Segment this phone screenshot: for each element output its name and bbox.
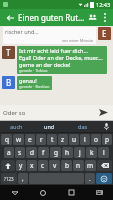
staticText: .	[89, 175, 91, 183]
staticText: Oder so	[3, 109, 26, 117]
button[interactable]: Ist mir echt leid fuer dich…	[19, 47, 105, 73]
button[interactable]: T	[2, 46, 15, 59]
button[interactable]: Hide keyboard	[0, 185, 29, 200]
button[interactable]: z	[58, 134, 68, 145]
button[interactable]: genau!	[19, 77, 50, 89]
staticText: g	[54, 148, 58, 157]
button[interactable]: v	[49, 160, 60, 171]
staticText: Egal! Oder an der Decke, muecken sind	[19, 54, 105, 61]
button[interactable]: m	[85, 160, 96, 171]
button[interactable]: auch	[0, 121, 33, 132]
staticText: auch	[10, 123, 23, 130]
button[interactable]: g	[50, 147, 61, 158]
button[interactable]: o	[91, 134, 101, 145]
staticText: gerne an der decke!	[19, 61, 71, 68]
button[interactable]: Recent apps	[57, 185, 85, 200]
staticText: m	[87, 161, 94, 170]
button[interactable]: l	[98, 147, 109, 158]
staticText: d	[30, 148, 34, 157]
staticText: e	[28, 135, 32, 144]
staticText: vor einer Minute	[62, 38, 94, 43]
staticText: c	[41, 161, 45, 170]
button[interactable]: k	[86, 147, 97, 158]
staticText: genau!	[19, 77, 37, 84]
staticText: t	[51, 135, 54, 144]
button[interactable]: x	[27, 160, 37, 171]
button[interactable]: q	[1, 134, 12, 145]
staticText: w	[16, 135, 22, 144]
staticText: das	[78, 123, 88, 130]
button[interactable]: das	[66, 121, 99, 132]
staticText: T	[6, 47, 11, 58]
staticText: q	[5, 135, 9, 144]
button[interactable]: Backspace	[97, 160, 112, 171]
button[interactable]: y	[16, 160, 26, 171]
staticText: x	[30, 161, 34, 170]
button[interactable]: Oder so	[3, 109, 97, 117]
button[interactable]: u	[69, 134, 79, 145]
button[interactable]: i	[80, 134, 90, 145]
staticText: ,	[22, 175, 24, 183]
button[interactable]: e	[25, 134, 35, 145]
button[interactable]: s	[15, 147, 25, 158]
button[interactable]: Emoji	[96, 173, 112, 184]
staticText: h	[65, 148, 70, 157]
button[interactable]: r	[36, 134, 46, 145]
staticText: gerade · Bastian	[19, 84, 50, 89]
staticText: 12:43	[96, 1, 111, 8]
button[interactable]: Back	[3, 11, 16, 24]
button[interactable]: w	[13, 134, 24, 145]
staticText: j	[79, 148, 81, 157]
button[interactable]: B	[2, 76, 15, 89]
staticText: u	[72, 135, 77, 144]
button[interactable]: h	[62, 147, 73, 158]
button[interactable]: Shift	[1, 160, 15, 171]
staticText: n	[76, 161, 81, 170]
button[interactable]: c	[38, 160, 48, 171]
staticText: ?123	[4, 176, 14, 182]
button[interactable]: Switch keyboard	[85, 185, 113, 200]
button[interactable]: n	[73, 160, 84, 171]
staticText: o	[94, 135, 98, 144]
staticText: y	[19, 161, 23, 170]
button[interactable]: j	[74, 147, 85, 158]
button[interactable]: E	[98, 27, 111, 40]
button[interactable]: und	[33, 121, 66, 132]
button[interactable]: rischer und…	[5, 28, 94, 43]
staticText: l	[103, 148, 105, 157]
button[interactable]: t	[47, 134, 57, 145]
staticText: v	[53, 161, 57, 170]
staticText: b	[65, 161, 69, 170]
button[interactable]: ,	[18, 173, 28, 184]
staticText: E	[102, 28, 107, 39]
staticText: s	[18, 148, 22, 157]
staticText: r	[40, 135, 43, 144]
staticText: k	[90, 148, 94, 157]
button[interactable]: d	[26, 147, 37, 158]
button[interactable]: More options	[99, 12, 110, 23]
button[interactable]: f	[38, 147, 49, 158]
staticText: Einen guten Rutsch in…	[18, 12, 86, 23]
button[interactable]: p	[102, 134, 112, 145]
staticText: f	[42, 148, 45, 157]
button[interactable]: ?123	[1, 173, 17, 184]
button[interactable]: b	[61, 160, 72, 171]
staticText: z	[61, 135, 65, 144]
button[interactable]: People	[86, 11, 99, 24]
button[interactable]: Voice input	[99, 121, 113, 132]
staticText: B	[6, 77, 12, 88]
button[interactable]: a	[4, 147, 14, 158]
staticText: rischer und…	[5, 28, 39, 35]
button[interactable]: .	[85, 173, 95, 184]
button[interactable]: Home	[29, 185, 57, 200]
staticText: gerade · Tobias	[19, 68, 48, 73]
staticText: i	[84, 135, 86, 144]
staticText: und	[44, 123, 55, 130]
button[interactable]: Send	[97, 106, 110, 119]
staticText: p	[105, 135, 109, 144]
staticText: Ist mir echt leid fuer dich…	[19, 47, 88, 54]
staticText: a	[7, 148, 11, 157]
